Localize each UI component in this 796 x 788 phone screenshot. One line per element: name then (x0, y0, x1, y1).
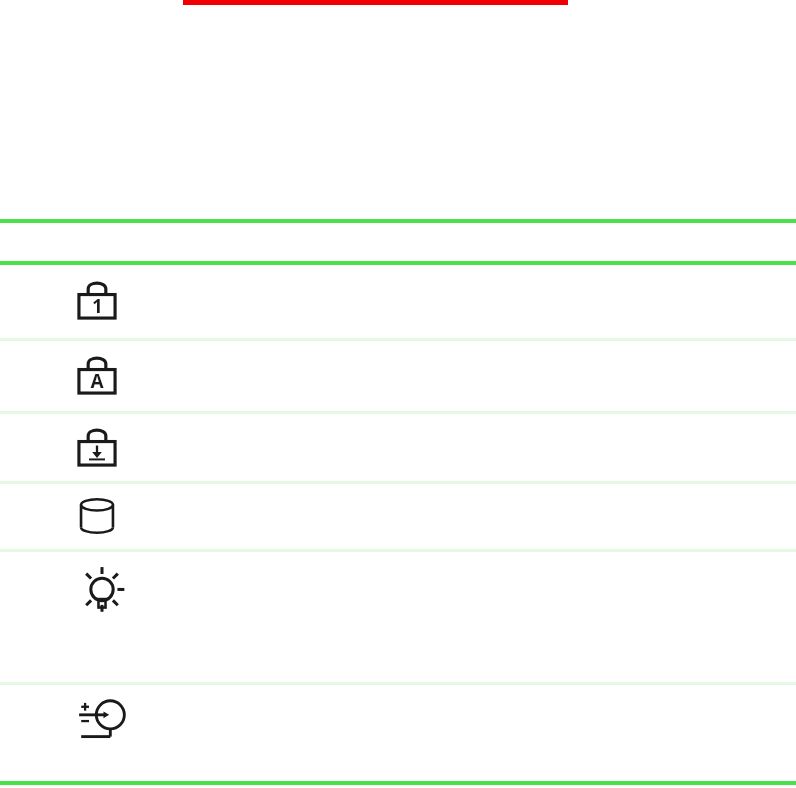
button[interactable]: Locked download (0, 414, 796, 481)
button[interactable]: Power source (0, 685, 796, 781)
staticText: 1 (92, 293, 103, 319)
staticText: A (90, 368, 104, 394)
button[interactable]: Locked item one (0, 265, 796, 338)
button[interactable]: Database (0, 484, 796, 549)
button[interactable]: Locked item A (0, 341, 796, 411)
button[interactable]: Light bulb (0, 552, 796, 682)
